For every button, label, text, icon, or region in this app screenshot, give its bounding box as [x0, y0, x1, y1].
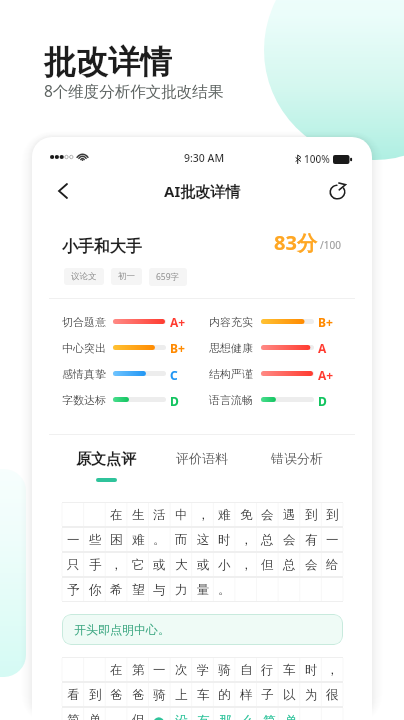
staticText: /100 [320, 238, 341, 252]
staticText: B+ [170, 340, 185, 356]
staticText: 9:30 AM [184, 151, 225, 165]
staticText: 骑 [153, 687, 166, 703]
staticText: 爸 [132, 687, 145, 703]
staticText: 但 [132, 712, 145, 720]
staticText: 车 [197, 687, 210, 703]
staticText: 会 [261, 507, 274, 523]
staticText: 以 [283, 687, 296, 703]
staticText: 或 [153, 557, 166, 573]
staticText: 生 [132, 507, 145, 523]
staticText: 原文点评 [76, 450, 136, 469]
button[interactable]: 原文点评 [69, 450, 143, 490]
staticText: 免 [240, 507, 253, 523]
staticText: 到 [89, 687, 102, 703]
staticText: 子 [261, 687, 274, 703]
staticText: 但 [261, 557, 274, 573]
button[interactable]: Back [47, 175, 79, 207]
staticText: 单 [285, 713, 298, 720]
staticText: 给 [326, 557, 339, 573]
staticText: 自 [240, 662, 253, 678]
staticText: 它 [132, 557, 145, 573]
staticText: 批改详情 [44, 42, 172, 82]
staticText: 爸 [110, 687, 123, 703]
staticText: 困 [110, 532, 123, 548]
button[interactable]: Share [321, 175, 353, 207]
staticText: 总 [283, 557, 296, 573]
staticText: 感情真挚 [62, 367, 106, 381]
staticText: 。 [153, 532, 166, 548]
staticText: D [318, 393, 327, 409]
staticText: 次 [175, 662, 188, 678]
staticText: A+ [318, 367, 334, 383]
staticText: 望 [132, 582, 145, 598]
button[interactable]: 评价语料 [171, 450, 233, 490]
staticText: 予 [67, 582, 80, 598]
button[interactable]: 错误分析 [266, 450, 328, 490]
staticText: B+ [318, 314, 333, 330]
staticText: 难 [218, 507, 231, 523]
staticText: 样 [240, 687, 253, 703]
staticText: 活 [153, 507, 166, 523]
staticText: A [318, 340, 327, 356]
staticText: 很 [326, 687, 339, 703]
staticText: 内容充实 [209, 315, 253, 329]
staticText: 评价语料 [176, 450, 228, 466]
staticText: 难 [132, 532, 145, 548]
staticText: 小 [218, 557, 231, 573]
staticText: 会 [305, 557, 318, 573]
staticText: 没 [175, 713, 188, 720]
staticText: 单 [89, 712, 102, 720]
staticText: 你 [89, 582, 102, 598]
staticText: 一 [326, 532, 339, 548]
staticText: 手 [89, 557, 102, 573]
staticText: 遇 [283, 507, 296, 523]
staticText: 这 [197, 532, 210, 548]
staticText: 到 [326, 507, 339, 523]
staticText: 简 [67, 712, 80, 720]
staticText: 一 [153, 662, 166, 678]
staticText: 第 [132, 662, 145, 678]
staticText: 或 [197, 557, 210, 573]
staticText: 总 [261, 532, 274, 548]
staticText: D [170, 393, 179, 409]
staticText: 。 [218, 582, 231, 598]
staticText: A+ [170, 314, 186, 330]
staticText: 初一 [118, 271, 135, 282]
staticText: 切合题意 [62, 315, 106, 329]
staticText: 只 [67, 557, 80, 573]
staticText: 而 [175, 532, 188, 548]
staticText: 的 [218, 687, 231, 703]
staticText: 字数达标 [62, 393, 106, 407]
staticText: C [170, 367, 178, 383]
staticText: 在 [110, 507, 123, 523]
staticText: ， [110, 557, 123, 573]
staticText: 车 [283, 662, 296, 678]
staticText: ， [240, 557, 253, 573]
staticText: 看 [67, 687, 80, 703]
staticText: 100% [304, 152, 330, 166]
staticText: 时 [305, 662, 318, 678]
staticText: 议论文 [71, 271, 97, 282]
staticText: 一 [67, 532, 80, 548]
staticText: 量 [197, 582, 210, 598]
staticText: ， [326, 662, 339, 678]
staticText: 与 [153, 582, 166, 598]
staticText: 上 [175, 687, 188, 703]
staticText: 简 [263, 713, 276, 720]
staticText: 在 [110, 662, 123, 678]
staticText: 为 [305, 687, 318, 703]
staticText: 时 [218, 532, 231, 548]
staticText: ， [197, 507, 210, 523]
staticText: 么 [241, 713, 254, 720]
staticText: 到 [305, 507, 318, 523]
staticText: 大 [175, 557, 188, 573]
staticText: 会 [283, 532, 296, 548]
staticText: 有 [197, 713, 210, 720]
staticText: 中心突出 [62, 341, 106, 355]
staticText: 开头即点明中心。 [74, 622, 170, 637]
staticText: 些 [89, 532, 102, 548]
staticText: 思想健康 [209, 341, 253, 355]
staticText: 小手和大手 [62, 237, 142, 257]
staticText: 有 [305, 532, 318, 548]
